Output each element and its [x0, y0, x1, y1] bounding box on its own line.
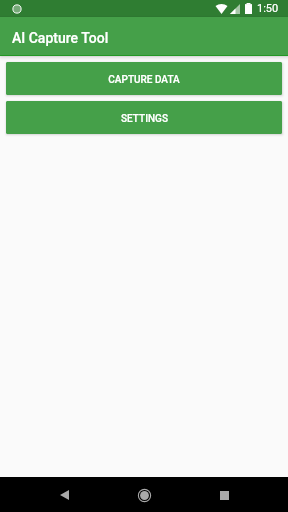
staticText: SETTINGS — [121, 113, 168, 125]
button[interactable]: SETTINGS — [6, 101, 282, 134]
staticText: 1:50 — [257, 2, 279, 15]
button[interactable]: CAPTURE DATA — [6, 62, 282, 95]
staticText: CAPTURE DATA — [108, 74, 180, 86]
button[interactable]: Recents — [210, 481, 238, 509]
button[interactable]: Back — [50, 481, 78, 509]
button[interactable]: Home — [130, 481, 158, 509]
staticText: AI Capture Tool — [12, 30, 109, 46]
